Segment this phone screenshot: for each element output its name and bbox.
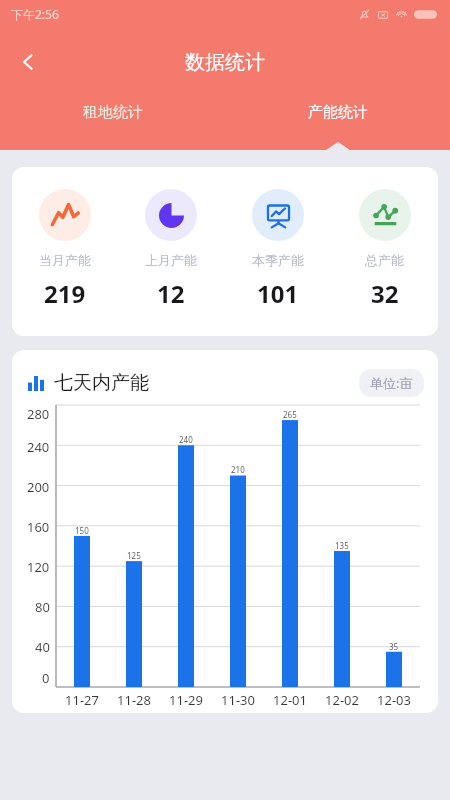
button[interactable]: 单位:亩 [359,369,424,397]
staticText: 12-03 [377,691,411,709]
staticText: 11-27 [65,691,99,709]
staticText: 32 [371,277,399,310]
staticText: 数据统计 [185,50,265,75]
staticText: 上月产能 [145,252,197,268]
staticText: 135 [335,540,349,551]
button[interactable]: 租地统计 [0,94,225,150]
staticText: 125 [127,550,141,561]
staticText: 160 [27,518,50,536]
button[interactable]: 总产能 [331,189,438,310]
staticText: 219 [44,277,86,310]
staticText: 210 [231,464,245,475]
staticText: 120 [27,558,50,576]
button[interactable]: 本季产能 [224,189,331,310]
staticText: 150 [75,525,89,536]
staticText: 七天内产能 [54,371,149,395]
staticText: 12-01 [273,691,307,709]
staticText: 11-29 [169,691,203,709]
staticText: 265 [283,409,297,420]
button[interactable]: Back [4,38,52,86]
staticText: 35 [389,641,399,652]
staticText: 240 [179,434,193,445]
staticText: 11-30 [221,691,255,709]
staticText: 101 [257,277,299,310]
staticText: 总产能 [365,252,404,268]
staticText: 80 [35,598,50,616]
button[interactable]: 上月产能 [118,189,224,310]
staticText: 单位:亩 [370,374,413,392]
staticText: 本季产能 [252,252,304,268]
staticText: 11-28 [117,691,151,709]
button[interactable]: 当月产能 [12,189,118,310]
staticText: 12-02 [325,691,359,709]
staticText: 租地统计 [83,103,143,122]
staticText: 当月产能 [39,252,91,268]
button[interactable]: 产能统计 [225,94,450,150]
staticText: 12 [157,277,185,310]
staticText: 240 [27,438,50,456]
staticText: 产能统计 [308,103,368,122]
staticText: 200 [27,478,50,496]
staticText: 40 [35,638,50,656]
staticText: 下午2:56 [11,6,59,22]
staticText: 280 [27,405,50,423]
staticText: 0 [42,669,50,687]
